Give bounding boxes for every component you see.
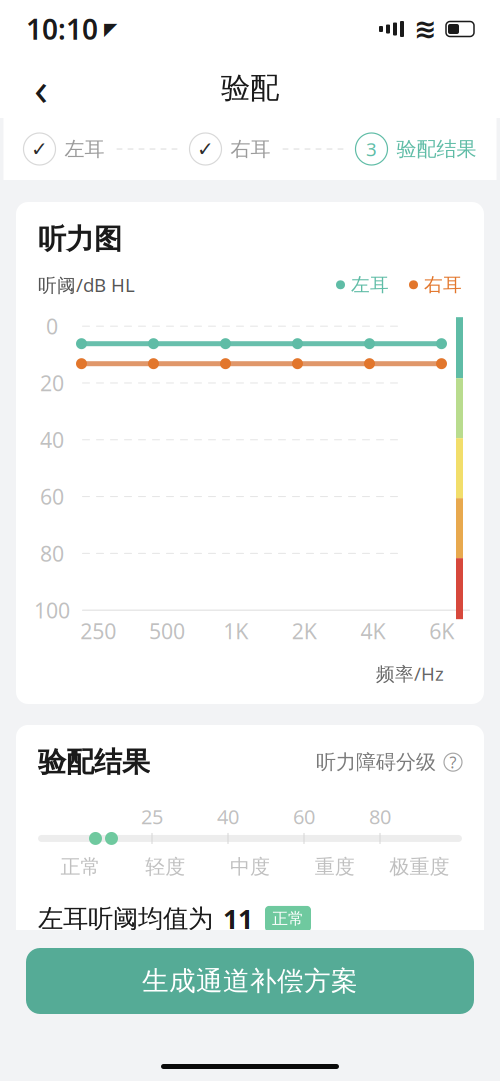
- staticText: 2K: [292, 617, 317, 645]
- staticText: 中度: [230, 854, 270, 879]
- staticText: 500: [149, 617, 185, 645]
- staticText: 听力图: [38, 222, 122, 256]
- staticText: 正常: [272, 909, 304, 929]
- staticText: 4K: [360, 617, 385, 645]
- staticText: 0: [46, 312, 58, 340]
- staticText: 频率/Hz: [376, 661, 444, 686]
- staticText: 轻度: [145, 854, 185, 879]
- staticText: 25: [141, 803, 163, 830]
- staticText: 左耳听阈均值为: [38, 903, 213, 934]
- staticText: 11: [223, 901, 253, 936]
- staticText: 250: [80, 617, 116, 645]
- button[interactable]: 生成通道补偿方案: [26, 948, 474, 1014]
- staticText: 10:10: [26, 10, 98, 48]
- staticText: 100: [34, 596, 70, 624]
- staticText: 重度: [315, 854, 355, 879]
- staticText: 右耳: [230, 137, 270, 161]
- staticText: 正常: [60, 854, 100, 879]
- staticText: ?: [449, 751, 456, 773]
- staticText: 右耳: [424, 273, 462, 296]
- staticText: 60: [293, 803, 315, 830]
- staticText: ✓: [197, 138, 214, 160]
- button[interactable]: 听力障碍分级: [316, 750, 462, 774]
- staticText: 1K: [223, 617, 248, 645]
- staticText: 生成通道补偿方案: [142, 965, 358, 997]
- staticText: 左耳: [64, 137, 104, 161]
- staticText: 40: [40, 426, 64, 454]
- staticText: 3: [366, 137, 377, 161]
- staticText: ‹: [34, 58, 48, 118]
- staticText: 验配结果: [38, 745, 150, 779]
- staticText: ◤: [98, 19, 117, 39]
- staticText: ≋: [414, 14, 436, 44]
- staticText: 验配结果: [396, 137, 476, 161]
- staticText: 40: [217, 803, 239, 830]
- staticText: 验配: [221, 70, 279, 106]
- staticText: 80: [369, 803, 391, 830]
- staticText: 听阈/dB HL: [38, 272, 135, 297]
- staticText: ✓: [31, 138, 48, 160]
- staticText: 极重度: [390, 854, 450, 879]
- staticText: 80: [40, 539, 64, 567]
- staticText: 20: [40, 369, 64, 397]
- staticText: 6K: [429, 617, 454, 645]
- button[interactable]: Back: [14, 61, 68, 115]
- staticText: 60: [40, 482, 64, 511]
- staticText: 左耳: [351, 273, 389, 296]
- staticText: 听力障碍分级: [316, 750, 436, 774]
